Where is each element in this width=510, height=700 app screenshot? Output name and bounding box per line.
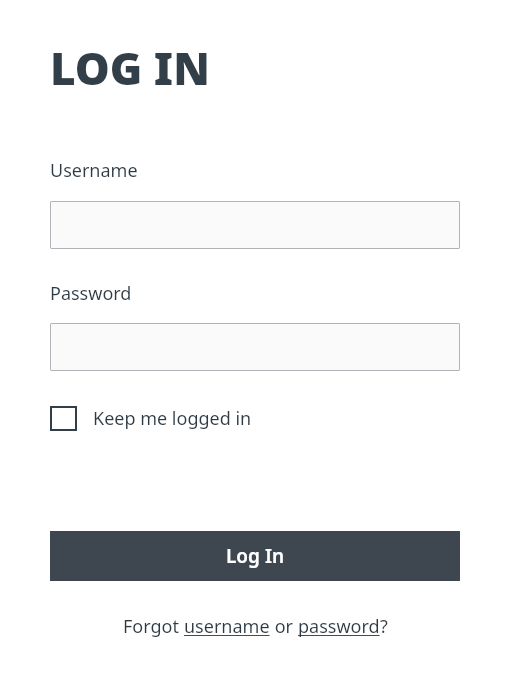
staticText: username [184, 614, 270, 639]
staticText: password [298, 614, 380, 639]
staticText: Log In [226, 543, 285, 569]
staticText: or [270, 614, 298, 639]
button[interactable]: username [184, 614, 270, 639]
button[interactable]: Keep me logged in [50, 406, 252, 431]
staticText: LOG IN [50, 38, 210, 98]
button[interactable]: password [298, 614, 380, 639]
staticText: ? [380, 614, 388, 639]
staticText: Username [50, 158, 138, 183]
staticText: Keep me logged in [93, 406, 252, 431]
staticText: Password [50, 281, 132, 306]
button[interactable]: Log In [50, 531, 460, 581]
button[interactable] [50, 323, 460, 371]
staticText: Forgot [123, 614, 184, 639]
button[interactable] [50, 201, 460, 249]
